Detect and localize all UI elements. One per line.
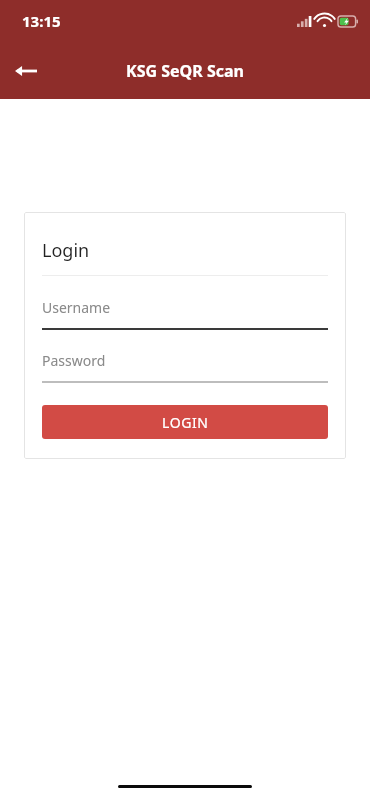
staticText: LOGIN — [162, 413, 209, 432]
staticText: Password — [42, 351, 106, 370]
button[interactable]: Password — [42, 351, 328, 383]
button[interactable]: LOGIN — [42, 405, 328, 439]
button[interactable]: Back — [6, 51, 46, 91]
staticText: KSG SeQR Scan — [126, 60, 244, 82]
staticText: Username — [42, 298, 111, 317]
button[interactable]: Username — [42, 298, 328, 330]
staticText: Login — [42, 238, 90, 263]
staticText: 13:15 — [22, 11, 61, 31]
